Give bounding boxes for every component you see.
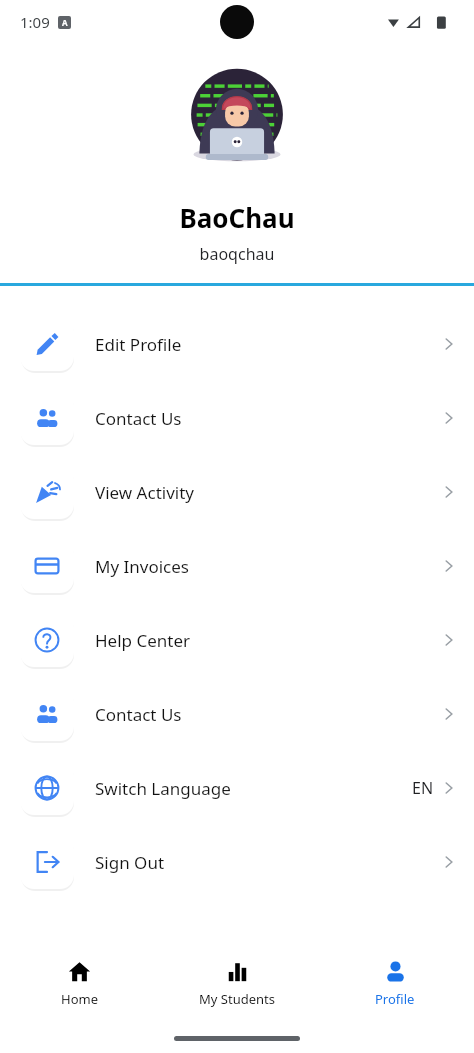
staticText: Profile	[375, 990, 415, 1008]
button[interactable]: Sign Out	[0, 825, 474, 899]
staticText: Help Center	[95, 629, 191, 652]
button[interactable]: Switch Language	[0, 751, 474, 825]
staticText: A	[62, 17, 68, 28]
staticText: Contact Us	[95, 703, 182, 726]
staticText: EN	[412, 777, 434, 799]
staticText: BaoChau	[0, 200, 474, 235]
button[interactable]: My Invoices	[0, 529, 474, 603]
button[interactable]: Profile	[316, 945, 474, 1023]
button[interactable]: Help Center	[0, 603, 474, 677]
button[interactable]: Edit Profile	[0, 307, 474, 381]
staticText: My Students	[199, 990, 275, 1008]
staticText: Contact Us	[95, 407, 182, 430]
staticText: My Invoices	[95, 555, 189, 578]
button[interactable]: Contact Us	[0, 677, 474, 751]
button[interactable]: My Students	[158, 945, 316, 1023]
staticText: Home	[61, 990, 98, 1008]
staticText: View Activity	[95, 481, 194, 504]
staticText: Sign Out	[95, 851, 165, 874]
staticText: Switch Language	[95, 777, 231, 800]
staticText: 1:09	[20, 12, 50, 32]
button[interactable]: Home	[0, 945, 158, 1023]
button[interactable]: Contact Us	[0, 381, 474, 455]
staticText: Edit Profile	[95, 333, 182, 356]
staticText: baoqchau	[0, 243, 474, 265]
button[interactable]: View Activity	[0, 455, 474, 529]
